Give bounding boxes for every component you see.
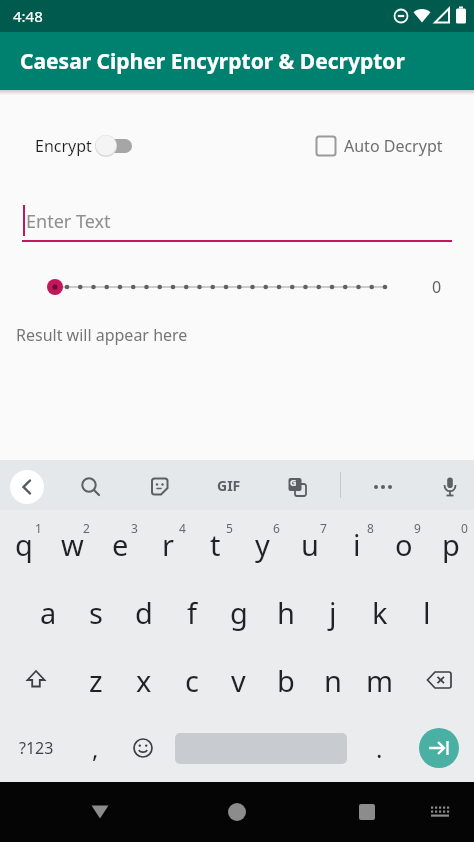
staticText: G — [290, 476, 297, 488]
staticText: b — [277, 661, 295, 700]
staticText: f — [187, 593, 197, 632]
button[interactable] — [371, 475, 395, 499]
button[interactable]: m — [356, 646, 403, 714]
button[interactable] — [10, 470, 44, 504]
staticText: h — [277, 593, 295, 632]
button[interactable]: Enter Text — [0, 194, 474, 240]
button[interactable]: n — [309, 646, 356, 714]
staticText: Auto Decrypt — [344, 135, 443, 157]
button[interactable] — [429, 803, 451, 821]
staticText: j — [329, 593, 337, 632]
staticText: 2 — [83, 520, 90, 536]
staticText: m — [366, 661, 394, 700]
staticText: q — [15, 525, 33, 564]
button[interactable]: l — [403, 578, 450, 646]
staticText: d — [135, 593, 153, 632]
staticText: Enter Text — [26, 209, 111, 234]
button[interactable] — [119, 714, 166, 782]
button[interactable]: o — [380, 510, 427, 578]
staticText: l — [423, 593, 431, 632]
button[interactable]: 0 — [0, 267, 474, 307]
staticText: n — [324, 661, 342, 700]
button[interactable] — [166, 714, 356, 782]
staticText: Result will appear here — [16, 324, 188, 346]
button[interactable]: v — [215, 646, 262, 714]
staticText: t — [210, 525, 221, 564]
staticText: p — [442, 525, 460, 564]
button[interactable]: x — [120, 646, 168, 714]
staticText: i — [353, 525, 361, 564]
staticText: u — [301, 525, 319, 564]
button[interactable] — [403, 714, 474, 782]
staticText: GIF — [217, 476, 241, 495]
button[interactable]: g — [215, 578, 262, 646]
button[interactable]: a — [24, 578, 72, 646]
button[interactable]: . — [356, 714, 403, 782]
staticText: Encrypt — [35, 135, 92, 157]
button[interactable]: Encrypt — [35, 135, 92, 157]
button[interactable]: j — [309, 578, 356, 646]
button[interactable]: G — [285, 475, 309, 499]
staticText: ?123 — [19, 737, 54, 759]
button[interactable]: c — [168, 646, 215, 714]
button[interactable]: y — [239, 510, 286, 578]
button[interactable]: f — [168, 578, 215, 646]
button[interactable]: , — [72, 714, 119, 782]
staticText: 4 — [179, 520, 186, 536]
staticText: c — [185, 661, 199, 700]
staticText: x — [136, 661, 152, 700]
staticText: g — [230, 593, 248, 632]
staticText: 0 — [432, 276, 442, 298]
staticText: v — [231, 661, 246, 700]
button[interactable]: k — [356, 578, 403, 646]
button[interactable]: q — [0, 510, 48, 578]
button[interactable]: z — [72, 646, 120, 714]
button[interactable] — [358, 803, 376, 821]
button[interactable] — [0, 646, 72, 714]
staticText: 5 — [226, 520, 233, 536]
staticText: Caesar Cipher Encyrptor & Decryptor — [20, 47, 405, 76]
staticText: z — [89, 661, 103, 700]
button[interactable] — [315, 135, 337, 157]
staticText: a — [40, 593, 57, 632]
button[interactable]: h — [262, 578, 309, 646]
staticText: . — [376, 732, 383, 765]
staticText: k — [372, 593, 388, 632]
staticText: w — [61, 525, 84, 564]
staticText: y — [255, 525, 270, 564]
staticText: 0 — [461, 520, 468, 536]
button[interactable]: i — [333, 510, 380, 578]
button[interactable]: e — [96, 510, 144, 578]
button[interactable]: r — [144, 510, 192, 578]
staticText: o — [395, 525, 413, 564]
button[interactable]: u — [286, 510, 333, 578]
button[interactable] — [79, 475, 103, 499]
staticText: 8 — [367, 520, 374, 536]
button[interactable]: d — [120, 578, 168, 646]
staticText: 9 — [414, 520, 421, 536]
button[interactable] — [403, 646, 474, 714]
staticText: 7 — [320, 520, 327, 536]
staticText: , — [92, 732, 99, 765]
staticText: 3 — [131, 520, 138, 536]
button[interactable] — [438, 475, 462, 499]
button[interactable] — [227, 802, 247, 822]
staticText: 1 — [35, 520, 42, 536]
button[interactable]: w — [48, 510, 96, 578]
button[interactable] — [148, 475, 172, 499]
staticText: s — [89, 593, 103, 632]
button[interactable] — [90, 803, 110, 821]
button[interactable]: ?123 — [0, 714, 72, 782]
button[interactable]: p — [427, 510, 474, 578]
button[interactable]: GIF — [210, 460, 248, 510]
button[interactable]: s — [72, 578, 120, 646]
staticText: 6 — [273, 520, 280, 536]
button[interactable] — [93, 132, 137, 160]
button[interactable]: t — [192, 510, 239, 578]
staticText: r — [162, 525, 174, 564]
staticText: 4:48 — [13, 6, 43, 26]
staticText: e — [112, 525, 129, 564]
button[interactable]: b — [262, 646, 309, 714]
